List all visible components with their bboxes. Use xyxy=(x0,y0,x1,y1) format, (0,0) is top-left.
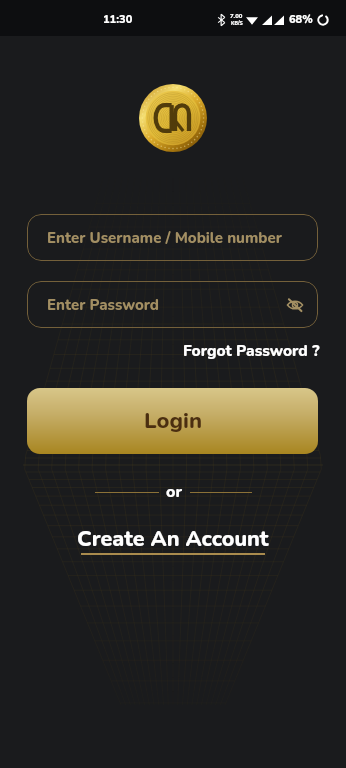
staticText: 11:30 xyxy=(103,12,133,27)
staticText: 68% xyxy=(289,12,313,27)
staticText: Enter Password xyxy=(47,295,159,315)
button[interactable]: Show password xyxy=(283,293,307,317)
button[interactable]: Login xyxy=(27,388,318,454)
button[interactable]: Create An Account xyxy=(77,524,269,555)
staticText: KB/S xyxy=(231,20,243,27)
staticText: or xyxy=(166,481,183,503)
staticText: Create An Account xyxy=(77,524,269,553)
staticText: 7.00 xyxy=(230,12,243,20)
staticText: Login xyxy=(144,406,202,436)
button[interactable]: Enter Username / Mobile number xyxy=(27,214,318,261)
staticText: Enter Username / Mobile number xyxy=(47,228,282,248)
button[interactable]: Enter Password xyxy=(27,281,318,328)
button[interactable]: Forgot Password ? xyxy=(183,340,320,361)
